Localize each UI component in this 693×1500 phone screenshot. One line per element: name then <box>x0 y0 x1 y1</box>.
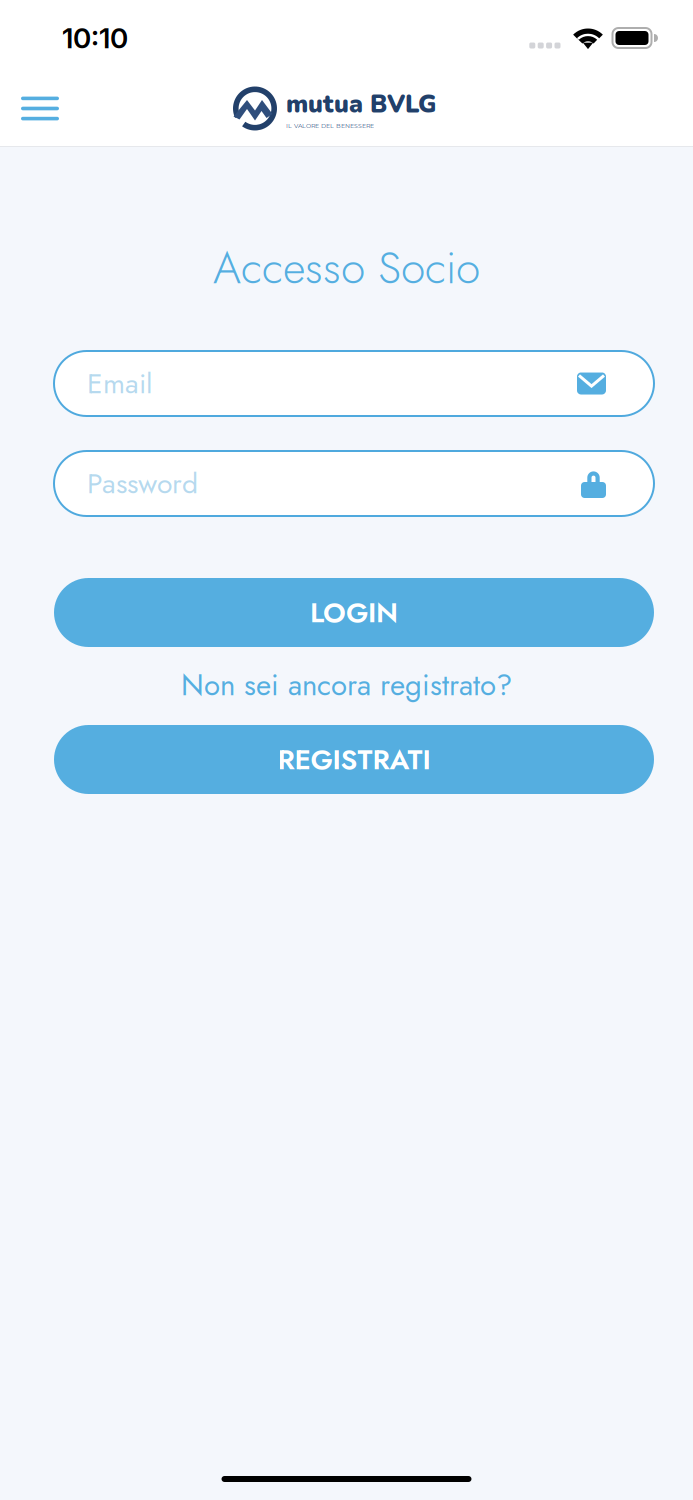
button[interactable]: LOGIN <box>54 578 654 647</box>
staticText: Email <box>87 363 153 404</box>
button[interactable]: Menu <box>10 83 70 133</box>
staticText: Password <box>87 463 198 504</box>
staticText: mutua BVLG <box>286 87 436 121</box>
staticText: Non sei ancora registrato? <box>181 664 512 706</box>
button[interactable]: Non sei ancora registrato? <box>181 665 512 705</box>
staticText: IL VALORE DEL BENESSERE <box>286 122 374 130</box>
staticText: REGISTRATI <box>277 739 430 780</box>
staticText: LOGIN <box>310 592 398 633</box>
button[interactable]: REGISTRATI <box>54 725 654 794</box>
staticText: 10:10 <box>62 21 128 55</box>
staticText: Accesso Socio <box>213 236 480 300</box>
